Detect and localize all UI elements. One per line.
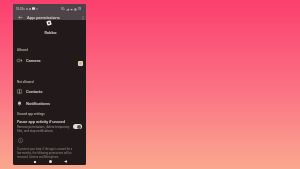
staticText: Camera <box>26 58 41 63</box>
staticText: Roblox <box>44 30 57 35</box>
button[interactable]: Camera <box>13 55 86 66</box>
staticText: Pause app activity if unused <box>17 119 66 124</box>
staticText: 10:23 <box>16 7 24 11</box>
staticText: App permissions <box>27 15 60 21</box>
staticText: To protect your data, if the app is unus… <box>17 147 76 159</box>
staticText: Remove permissions, delete temporary fil… <box>17 125 72 133</box>
button[interactable]: Home <box>46 157 55 165</box>
button[interactable]: Back <box>17 14 24 21</box>
staticText: Contacts <box>26 89 43 94</box>
button[interactable]: More options <box>79 14 86 21</box>
staticText: 78 <box>78 7 81 11</box>
button[interactable]: Contacts <box>13 86 86 97</box>
button[interactable]: Back <box>61 157 70 165</box>
staticText: Unused app settings <box>17 112 45 116</box>
staticText: Allowed <box>17 48 28 52</box>
button[interactable]: Notifications <box>13 98 86 109</box>
staticText: 5G <box>61 7 65 11</box>
button[interactable]: Recent apps <box>30 157 39 165</box>
button[interactable]: Pause app activity if unused toggle <box>73 124 82 129</box>
staticText: Notifications <box>26 101 50 106</box>
staticText: Not allowed <box>17 80 34 84</box>
